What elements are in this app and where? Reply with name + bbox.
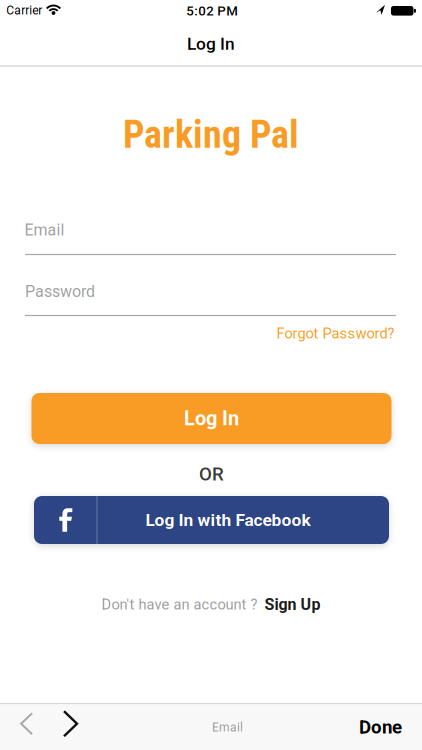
button[interactable]: Forgot Password? (276, 325, 394, 342)
staticText: Password (25, 282, 95, 301)
staticText: Log In (187, 34, 235, 54)
button[interactable]: Next field (64, 711, 77, 736)
staticText: Don't have an account ? (101, 596, 257, 613)
button[interactable]: Password (0, 267, 422, 316)
button[interactable]: Done (359, 716, 402, 738)
staticText: Forgot Password? (276, 325, 394, 342)
button[interactable]: Email (0, 206, 422, 255)
staticText: Log In with Facebook (145, 510, 310, 530)
staticText: Parking Pal (123, 112, 299, 157)
staticText: Done (359, 716, 402, 738)
button[interactable]: Log In (31, 393, 391, 444)
staticText: 5:02 PM (186, 3, 238, 19)
staticText: Email (24, 221, 64, 239)
button[interactable]: Log In with Facebook (34, 496, 389, 544)
staticText: Sign Up (264, 595, 320, 614)
staticText: Log In (184, 407, 239, 430)
button[interactable]: Previous field (21, 713, 32, 734)
staticText: OR (199, 463, 224, 485)
button[interactable]: Sign Up (264, 595, 320, 614)
staticText: Carrier (6, 4, 42, 17)
staticText: Email (212, 721, 243, 734)
